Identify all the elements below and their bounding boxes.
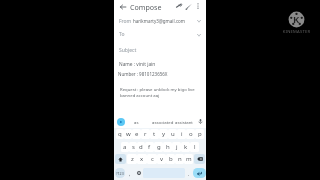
staticText: Request : please unblock my bigo live ba… xyxy=(120,86,202,98)
button[interactable]: Send xyxy=(183,1,193,11)
staticText: y xyxy=(162,130,166,138)
button[interactable]: Symbols xyxy=(115,168,125,178)
button[interactable]: z xyxy=(127,154,137,164)
button[interactable]: u xyxy=(168,129,177,139)
staticText: a xyxy=(123,143,127,151)
staticText: K xyxy=(293,13,300,26)
button[interactable]: h xyxy=(163,142,172,152)
staticText: q xyxy=(118,130,122,138)
staticText: z xyxy=(131,155,134,163)
staticText: , xyxy=(129,170,131,177)
staticText: p xyxy=(198,130,202,138)
button[interactable]: Period xyxy=(185,167,193,179)
button[interactable]: w xyxy=(124,129,132,139)
button[interactable]: Emoji xyxy=(134,167,143,179)
button[interactable]: i xyxy=(177,129,186,139)
button[interactable]: s xyxy=(129,142,137,152)
button[interactable]: Expand recipients xyxy=(195,31,203,39)
button[interactable]: y xyxy=(159,129,168,139)
button[interactable]: t xyxy=(150,129,159,139)
staticText: Compose xyxy=(130,2,162,12)
button[interactable]: Expand sender xyxy=(195,17,203,25)
button[interactable]: f xyxy=(145,142,154,152)
staticText: j xyxy=(176,143,178,151)
staticText: assistant xyxy=(175,119,193,125)
button[interactable]: d xyxy=(137,142,145,152)
button[interactable]: n xyxy=(175,154,184,164)
staticText: g xyxy=(157,143,161,151)
button[interactable]: b xyxy=(166,154,175,164)
staticText: x xyxy=(140,155,144,163)
staticText: b xyxy=(169,155,173,163)
button[interactable]: v xyxy=(157,154,166,164)
staticText: m xyxy=(186,155,192,163)
staticText: ?123 xyxy=(116,171,124,176)
staticText: u xyxy=(171,130,175,138)
staticText: i xyxy=(181,130,183,138)
staticText: k xyxy=(184,143,188,151)
button[interactable]: Backspace xyxy=(194,154,205,164)
staticText: f xyxy=(148,143,151,151)
button[interactable]: r xyxy=(141,129,150,139)
staticText: . xyxy=(188,170,190,177)
button[interactable]: Google Assistant xyxy=(117,118,125,126)
button[interactable]: Voice input xyxy=(196,117,205,126)
staticText: e xyxy=(135,130,139,138)
button[interactable]: x xyxy=(137,154,147,164)
staticText: Subject xyxy=(119,47,137,54)
staticText: t xyxy=(153,130,156,138)
staticText: associated xyxy=(152,119,174,125)
staticText: h xyxy=(166,143,170,151)
button[interactable]: Enter xyxy=(193,168,206,178)
staticText: l xyxy=(194,143,196,151)
button[interactable]: l xyxy=(190,142,199,152)
button[interactable]: a xyxy=(121,142,129,152)
staticText: Number : 9810123656X xyxy=(118,71,168,77)
staticText: To xyxy=(119,31,125,38)
button[interactable]: Back xyxy=(117,1,128,12)
button[interactable]: j xyxy=(172,142,181,152)
staticText: w xyxy=(126,130,131,138)
staticText: c xyxy=(151,155,154,163)
button[interactable]: p xyxy=(195,129,204,139)
staticText: s xyxy=(132,143,135,151)
staticText: d xyxy=(139,143,143,151)
button[interactable]: q xyxy=(116,129,124,139)
button[interactable]: c xyxy=(147,154,157,164)
staticText: Name : vinit jain xyxy=(119,61,156,68)
staticText: KINEMASTER xyxy=(281,29,312,35)
staticText: v xyxy=(160,155,164,163)
button[interactable]: More options xyxy=(193,1,203,11)
staticText: n xyxy=(178,155,182,163)
staticText: harikmarty3@gmail.com xyxy=(133,18,185,24)
staticText: r xyxy=(144,130,147,138)
staticText: as xyxy=(134,119,139,125)
button[interactable]: k xyxy=(181,142,190,152)
button[interactable]: o xyxy=(186,129,195,139)
button[interactable]: e xyxy=(132,129,141,139)
button[interactable]: Comma xyxy=(126,167,134,179)
staticText: o xyxy=(189,130,193,138)
button[interactable]: g xyxy=(154,142,163,152)
button[interactable]: Shift xyxy=(115,154,126,164)
staticText: From xyxy=(119,18,132,25)
button[interactable]: Attach file xyxy=(174,1,184,11)
button[interactable]: m xyxy=(184,154,193,164)
